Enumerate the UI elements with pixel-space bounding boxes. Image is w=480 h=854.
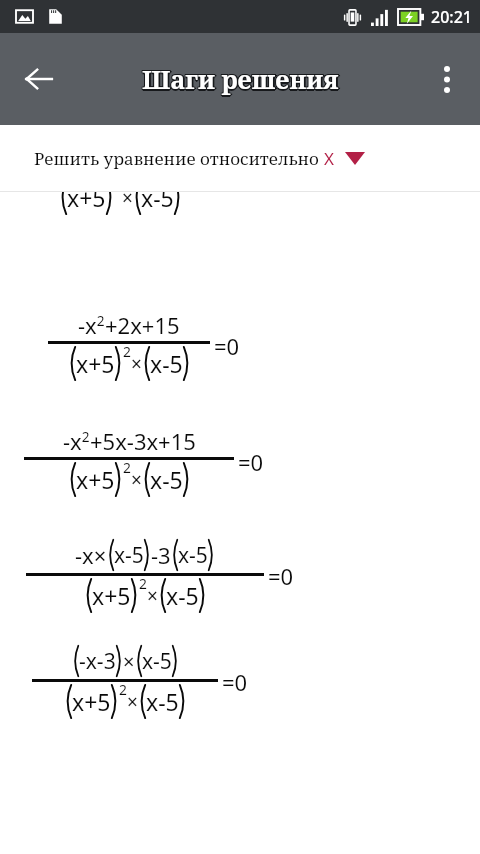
staticText: Шаги решения	[141, 62, 338, 96]
staticText: Шаги решения	[144, 62, 341, 96]
staticText: x-5	[146, 686, 179, 717]
staticText: x-5	[142, 647, 172, 676]
staticText: +5x-3x+15	[90, 426, 196, 456]
staticText: Шаги решения	[141, 61, 338, 95]
staticText: -x2	[63, 426, 90, 456]
staticText: =0	[214, 331, 240, 361]
staticText: =0	[268, 561, 294, 591]
staticText: ×	[131, 467, 142, 493]
staticText: Решить уравнение относительно	[34, 147, 324, 170]
staticText: ×	[131, 351, 142, 377]
staticText: Шаги решения	[142, 64, 339, 98]
staticText: x-5	[141, 192, 174, 213]
staticText: Шаги решения	[142, 62, 339, 96]
button[interactable]: -x-3	[0, 644, 480, 720]
staticText: +2x+15	[105, 310, 180, 340]
staticText: ×	[123, 648, 135, 675]
staticText: -x2	[78, 310, 105, 340]
staticText: -3	[151, 540, 171, 570]
staticText: x+5	[92, 580, 131, 611]
staticText: x-5	[178, 541, 208, 570]
button[interactable]: Назад	[10, 50, 68, 108]
staticText: =0	[238, 447, 264, 477]
button[interactable]: -x2	[0, 310, 480, 382]
staticText: Шаги решения	[142, 61, 339, 95]
staticText: x-5	[150, 348, 183, 379]
staticText: x+5	[76, 464, 115, 495]
staticText: x-5	[150, 464, 183, 495]
button[interactable]: -x×	[0, 538, 480, 614]
staticText: =0	[222, 667, 248, 697]
staticText: -x×	[75, 540, 107, 570]
staticText: 20:21	[431, 6, 472, 28]
staticText: ×	[147, 583, 158, 609]
staticText: ×	[122, 192, 133, 211]
button[interactable]: Решить уравнение относительно	[0, 125, 480, 191]
staticText: ×	[127, 689, 138, 715]
staticText: x+5	[76, 348, 115, 379]
button[interactable]: Ещё	[420, 52, 474, 106]
staticText: Шаги решения	[143, 61, 340, 95]
button[interactable]: -x2	[0, 192, 480, 280]
staticText: 2	[139, 574, 147, 593]
staticText: -x-3	[79, 647, 116, 676]
staticText: x-5	[166, 580, 199, 611]
staticText: 2	[119, 680, 127, 699]
staticText: x+5	[67, 192, 106, 213]
staticText: Шаги решения	[143, 63, 340, 97]
button[interactable]: -x2	[0, 426, 480, 498]
staticText: X	[324, 147, 334, 170]
staticText: Шаги решения	[141, 63, 338, 97]
staticText: 2	[123, 342, 131, 361]
staticText: x+5	[72, 686, 111, 717]
staticText: 2	[123, 458, 131, 477]
staticText: x-5	[114, 541, 144, 570]
